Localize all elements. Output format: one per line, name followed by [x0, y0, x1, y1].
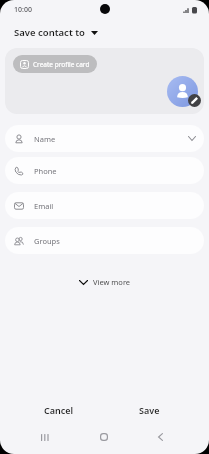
- staticText: Save: [139, 404, 160, 416]
- staticText: Create profile card: [33, 60, 90, 69]
- button[interactable]: Groups: [5, 227, 204, 254]
- staticText: Phone: [34, 166, 57, 176]
- staticText: Save contact to: [14, 26, 85, 39]
- staticText: Cancel: [44, 404, 74, 416]
- button[interactable]: [167, 76, 198, 107]
- button[interactable]: Email: [5, 192, 204, 219]
- button[interactable]: View more: [0, 274, 209, 290]
- staticText: 10:00: [14, 5, 32, 15]
- button[interactable]: [89, 428, 118, 446]
- staticText: Groups: [34, 236, 60, 246]
- button[interactable]: [31, 428, 59, 446]
- staticText: Email: [34, 201, 54, 211]
- button[interactable]: Save: [104, 399, 195, 420]
- button[interactable]: Phone: [5, 157, 204, 184]
- staticText: Name: [34, 134, 56, 144]
- button[interactable]: Save contact to: [14, 26, 98, 39]
- button[interactable]: Cancel: [13, 399, 104, 420]
- button[interactable]: [146, 428, 174, 446]
- button[interactable]: Create profile card: [13, 55, 97, 73]
- staticText: View more: [93, 277, 131, 287]
- button[interactable]: Name: [5, 125, 204, 152]
